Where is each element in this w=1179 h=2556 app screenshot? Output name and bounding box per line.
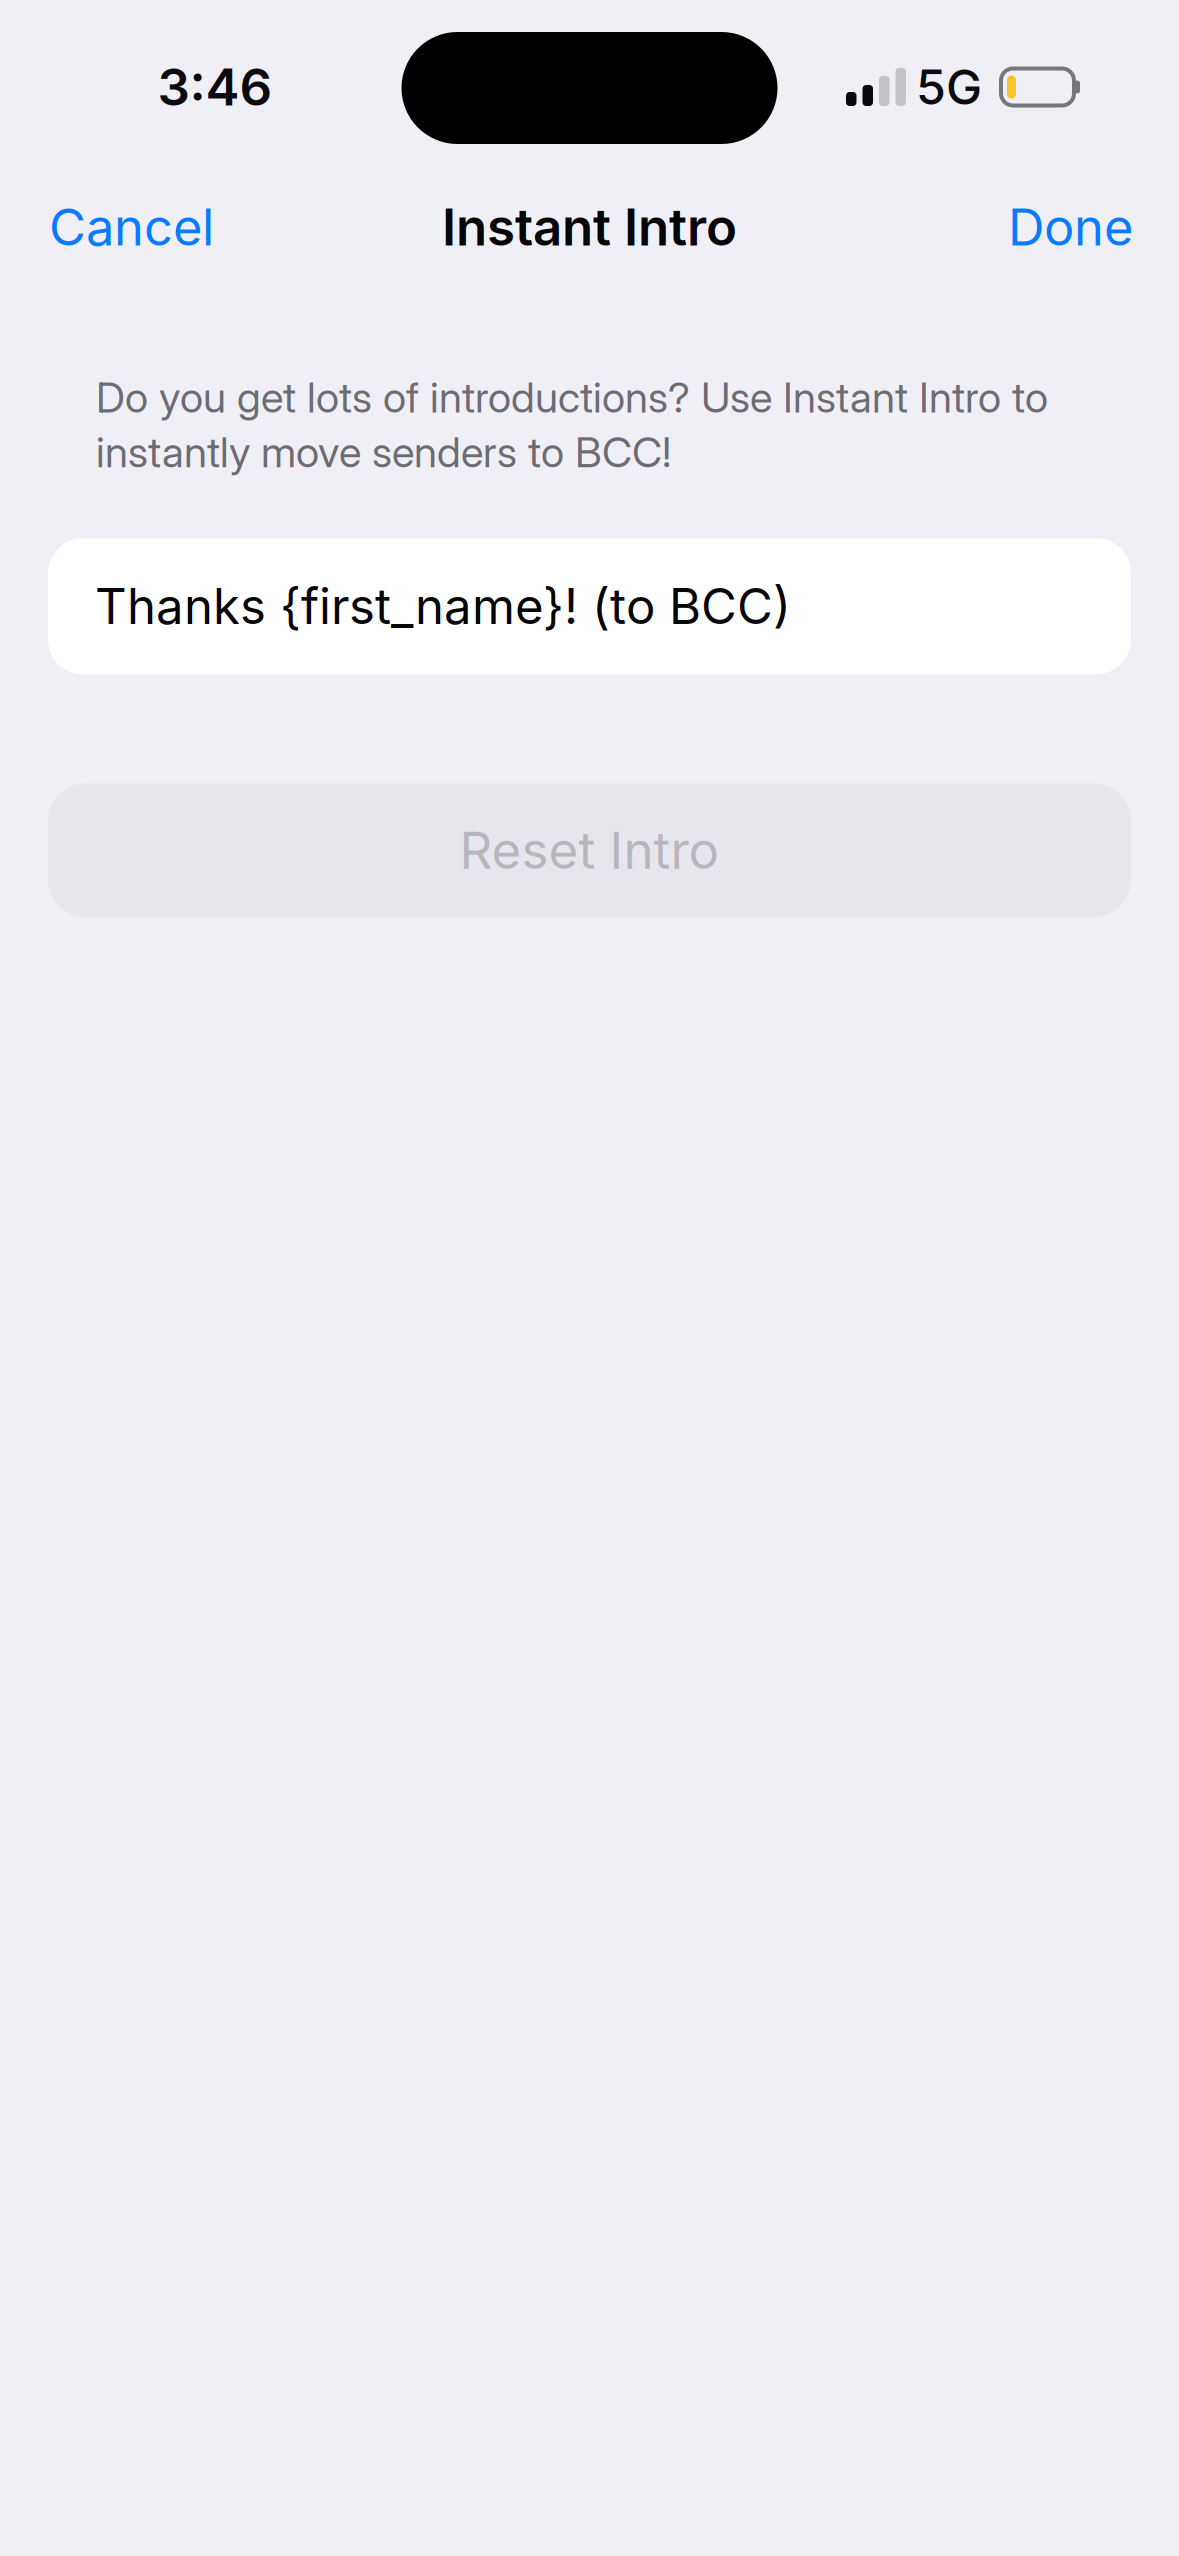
button[interactable]: Done: [1000, 174, 1141, 280]
button[interactable]: Thanks {first_name}! (to BCC): [48, 538, 1131, 674]
staticText: Done: [1008, 196, 1133, 258]
button[interactable]: Reset Intro: [48, 783, 1131, 917]
staticText: Thanks {first_name}! (to BCC): [95, 577, 791, 636]
staticText: Reset Intro: [459, 819, 719, 881]
staticText: 3:46: [157, 56, 272, 118]
button[interactable]: Cancel: [41, 174, 222, 280]
staticText: Instant Intro: [442, 196, 737, 258]
staticText: 5G: [916, 58, 982, 116]
staticText: Cancel: [49, 196, 214, 258]
staticText: Do you get lots of introductions? Use In…: [96, 372, 1048, 477]
